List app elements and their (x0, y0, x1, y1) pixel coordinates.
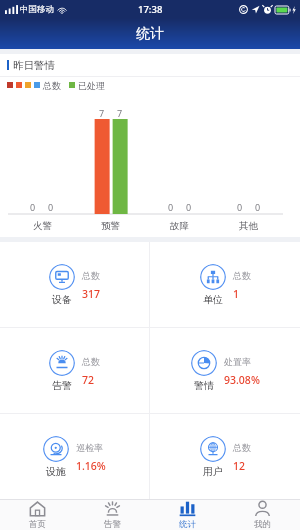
staticText: 警情 (194, 379, 214, 392)
staticText: 处置率 (224, 356, 251, 367)
staticText: 7 (99, 107, 105, 119)
staticText: 7 (117, 107, 123, 119)
staticText: 用户 (203, 465, 223, 478)
staticText: 总数 (233, 270, 251, 281)
button[interactable]: 告警 (75, 500, 150, 530)
staticText: 中国移动 (20, 4, 54, 15)
staticText: 0 (30, 201, 36, 213)
staticText: 1.16% (76, 459, 106, 473)
staticText: 单位 (203, 293, 223, 306)
button[interactable]: 设备 (0, 242, 149, 327)
button[interactable]: 用户 (150, 414, 300, 499)
button[interactable]: 统计 (150, 500, 225, 530)
staticText: 统计 (136, 25, 164, 43)
staticText: 设施 (46, 465, 66, 478)
staticText: 昨日警情 (13, 59, 55, 72)
staticText: 设备 (52, 293, 72, 306)
staticText: 首页 (29, 519, 46, 530)
staticText: 0 (48, 201, 54, 213)
staticText: 巡检率 (76, 442, 103, 453)
staticText: 统计 (179, 519, 196, 530)
staticText: 317 (82, 287, 101, 301)
staticText: 告警 (52, 379, 72, 392)
staticText: 0 (255, 201, 261, 213)
staticText: 1 (233, 287, 240, 301)
button[interactable]: 单位 (150, 242, 300, 327)
staticText: 12 (233, 459, 246, 473)
staticText: 故障 (170, 220, 189, 232)
button[interactable]: 我的 (225, 500, 300, 530)
staticText: 93.08% (224, 373, 260, 387)
staticText: 总数 (233, 442, 251, 453)
staticText: 已处理 (78, 80, 105, 91)
staticText: 0 (186, 201, 192, 213)
staticText: 72 (82, 373, 95, 387)
staticText: 0 (237, 201, 243, 213)
button[interactable]: 设施 (0, 414, 149, 499)
staticText: 火警 (33, 220, 52, 232)
staticText: 总数 (82, 356, 100, 367)
staticText: 总数 (82, 270, 100, 281)
button[interactable]: 告警 (0, 328, 149, 413)
staticText: 其他 (239, 220, 258, 232)
staticText: 总数 (43, 80, 61, 91)
button[interactable]: 警情 (150, 328, 300, 413)
button[interactable]: 首页 (0, 500, 75, 530)
staticText: 预警 (101, 220, 120, 232)
staticText: 我的 (254, 519, 271, 530)
staticText: 17:38 (138, 3, 163, 16)
staticText: 0 (168, 201, 174, 213)
staticText: 告警 (104, 519, 121, 530)
